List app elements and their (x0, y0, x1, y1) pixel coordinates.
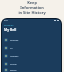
button[interactable]: Internet (4, 36, 61, 44)
other: Billing (4, 68, 8, 72)
button[interactable]: Services (4, 23, 14, 26)
button[interactable]: Mobility (4, 52, 61, 60)
staticText: Phone (10, 63, 17, 66)
staticText: My Bell (4, 27, 17, 32)
staticText: 9:41 (4, 19, 8, 22)
button[interactable]: Phone (4, 60, 61, 68)
staticText: Billing (10, 69, 17, 72)
staticText: Mobility (10, 55, 19, 58)
other: Internet (4, 38, 8, 42)
other: TV (4, 46, 8, 50)
staticText: Keep Information in Site History (18, 0, 46, 15)
staticText: Internet (10, 39, 19, 42)
staticText: TV (10, 47, 13, 50)
button[interactable]: Billing (4, 68, 61, 72)
other: Mobility (4, 54, 8, 58)
button[interactable]: TV (4, 44, 61, 52)
other: Phone (4, 62, 8, 66)
